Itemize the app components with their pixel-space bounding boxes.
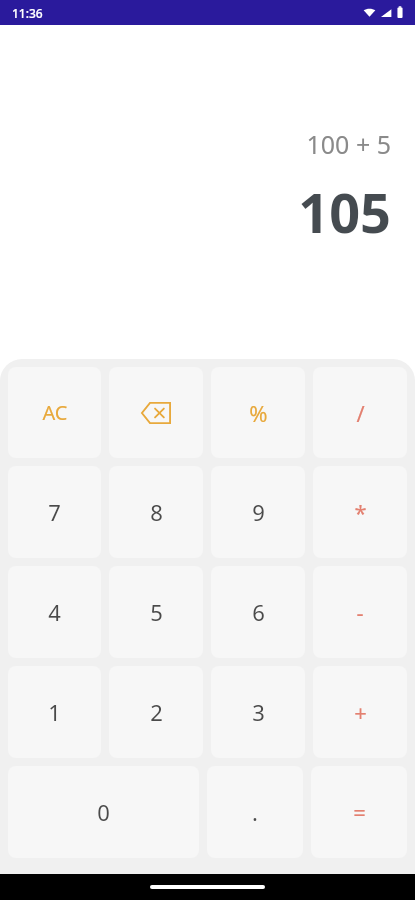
button[interactable]: 0 (8, 766, 199, 858)
button[interactable]: 8 (109, 466, 203, 558)
staticText: = (353, 797, 366, 827)
staticText: 4 (48, 597, 61, 627)
staticText: 2 (150, 697, 163, 727)
staticText: - (356, 597, 364, 627)
button[interactable]: + (313, 666, 407, 758)
button[interactable]: - (313, 566, 407, 658)
staticText: * (354, 497, 367, 527)
button[interactable]: 9 (211, 466, 305, 558)
button[interactable]: 6 (211, 566, 305, 658)
staticText: . (252, 797, 258, 827)
button[interactable]: * (313, 466, 407, 558)
staticText: 1 (48, 697, 61, 727)
button[interactable]: Backspace (109, 367, 203, 458)
button[interactable]: AC (8, 367, 101, 458)
button[interactable]: % (211, 367, 305, 458)
button[interactable]: = (311, 766, 407, 858)
staticText: 0 (97, 797, 110, 827)
staticText: 8 (150, 497, 163, 527)
staticText: 6 (252, 597, 265, 627)
button[interactable]: 1 (8, 666, 101, 758)
button[interactable]: 4 (8, 566, 101, 658)
staticText: 9 (252, 497, 265, 527)
staticText: + (354, 697, 367, 727)
staticText: AC (42, 399, 68, 426)
staticText: / (356, 398, 365, 428)
staticText: 7 (48, 497, 61, 527)
button[interactable]: 3 (211, 666, 305, 758)
staticText: 11:36 (12, 5, 43, 21)
button[interactable]: 5 (109, 566, 203, 658)
button[interactable]: 2 (109, 666, 203, 758)
staticText: 3 (252, 697, 265, 727)
staticText: 5 (150, 597, 163, 627)
button[interactable]: 7 (8, 466, 101, 558)
button[interactable]: . (207, 766, 303, 858)
staticText: % (249, 398, 268, 428)
staticText: 100 + 5 (306, 127, 391, 161)
button[interactable]: / (313, 367, 407, 458)
staticText: 105 (298, 175, 391, 249)
